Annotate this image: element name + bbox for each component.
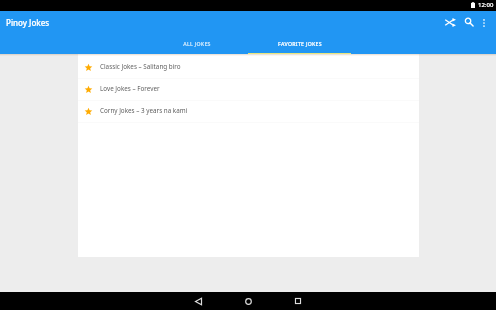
staticText: FAVORITE JOKES: [278, 40, 322, 47]
button[interactable]: Recent apps: [288, 292, 307, 310]
staticText: Love Jokes – Forever: [100, 84, 160, 93]
button[interactable]: Search: [460, 14, 479, 33]
staticText: ALL JOKES: [183, 40, 211, 47]
staticText: Classic Jokes – Salitang biro: [100, 62, 181, 71]
button[interactable]: Love Jokes – Forever: [78, 79, 419, 100]
staticText: 12:00: [478, 1, 494, 9]
button[interactable]: Back: [189, 292, 208, 310]
button[interactable]: FAVORITE JOKES: [248, 35, 351, 54]
button[interactable]: Corny Jokes – 3 years na kami: [78, 101, 419, 122]
button[interactable]: ALL JOKES: [145, 35, 248, 54]
staticText: Corny Jokes – 3 years na kami: [100, 106, 188, 115]
button[interactable]: Shuffle: [441, 14, 460, 33]
button[interactable]: More options: [474, 14, 493, 33]
button[interactable]: Classic Jokes – Salitang biro: [78, 57, 419, 78]
staticText: Pinoy Jokes: [6, 17, 50, 28]
button[interactable]: Home: [239, 292, 258, 310]
